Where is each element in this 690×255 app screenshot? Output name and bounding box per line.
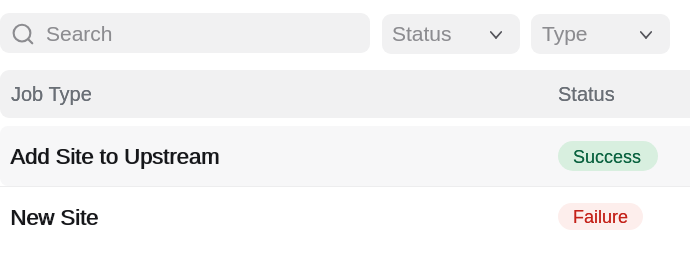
staticText: Job Type [11,83,92,105]
button[interactable]: Search [0,13,370,53]
button[interactable]: Type [531,14,670,54]
button[interactable]: New Site [0,187,690,247]
staticText: Success [573,147,642,167]
button[interactable]: Status [382,14,520,54]
staticText: Status [392,22,452,45]
staticText: Status [558,83,615,105]
staticText: Success [573,147,642,167]
staticText: Status [558,83,615,105]
other: Open Type filter [639,31,653,39]
staticText: Type [542,22,588,45]
staticText: Search [46,22,113,45]
staticText: Failure [573,207,629,227]
staticText: Job Type [11,83,92,105]
staticText: Add Site to Upstream [10,144,220,169]
staticText: New Site [11,205,100,230]
staticText: Failure [573,207,629,227]
button[interactable]: Add Site to Upstream [0,126,690,186]
other: Search [13,24,35,46]
staticText: Add Site to Upstream [11,144,221,169]
other: Open Status filter [489,31,503,39]
staticText: New Site [10,205,99,230]
